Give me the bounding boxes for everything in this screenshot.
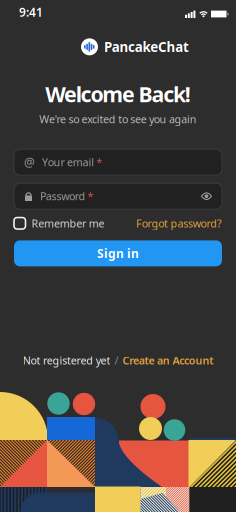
staticText: / xyxy=(114,353,118,368)
button[interactable]: Remember me xyxy=(14,216,104,230)
staticText: @ xyxy=(24,154,35,170)
staticText: Not registered yet xyxy=(23,353,110,368)
staticText: We're so excited to see you again xyxy=(39,112,197,126)
staticText: PancakeChat xyxy=(104,38,189,56)
button[interactable]: Create an Account xyxy=(122,353,213,368)
staticText: Sign in xyxy=(97,245,139,261)
button[interactable]: @ xyxy=(14,149,222,175)
button[interactable]: Password xyxy=(14,183,222,209)
staticText: Welcome Back! xyxy=(45,80,191,108)
staticText: Forgot password? xyxy=(136,216,222,230)
staticText: * xyxy=(96,155,102,169)
staticText: * xyxy=(88,189,94,203)
button[interactable]: Forgot password? xyxy=(136,216,222,230)
button[interactable]: Sign in xyxy=(14,240,222,266)
staticText: Remember me xyxy=(31,216,104,230)
staticText: Password xyxy=(40,189,86,203)
staticText: 9:41 xyxy=(19,4,43,20)
staticText: Your email xyxy=(42,155,94,169)
button[interactable]: Show password xyxy=(201,192,212,200)
staticText: Create an Account xyxy=(122,353,213,368)
